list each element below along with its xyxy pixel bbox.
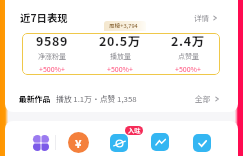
- button[interactable]: Data analytics: [151, 133, 169, 151]
- staticText: 全部: [195, 93, 211, 104]
- staticText: 点赞量: [178, 51, 199, 61]
- staticText: 最新作品: [19, 93, 51, 104]
- staticText: +500%+: [175, 64, 201, 74]
- button[interactable]: Join creator program: [110, 134, 128, 152]
- staticText: 入驻: [128, 126, 141, 135]
- staticText: 净涨粉量: [38, 51, 66, 61]
- staticText: 近7日表现: [20, 10, 68, 25]
- button[interactable]: 全部: [195, 93, 220, 104]
- staticText: ¥: [75, 135, 82, 151]
- staticText: 20.5万: [99, 33, 141, 50]
- button[interactable]: Earnings: [68, 132, 89, 153]
- button[interactable]: All tools: [25, 131, 56, 154]
- staticText: +500%+: [107, 64, 133, 74]
- staticText: 9589: [36, 33, 69, 50]
- staticText: 周榜+3,794: [109, 22, 138, 30]
- staticText: +500%+: [39, 64, 65, 74]
- button[interactable]: 详情: [194, 12, 218, 23]
- staticText: 2.4万: [171, 33, 205, 50]
- staticText: 播放 1.1万·点赞 1,358: [56, 93, 137, 104]
- staticText: 详情: [194, 12, 209, 23]
- button[interactable]: Tasks: [193, 134, 211, 152]
- staticText: 播放量: [110, 51, 131, 61]
